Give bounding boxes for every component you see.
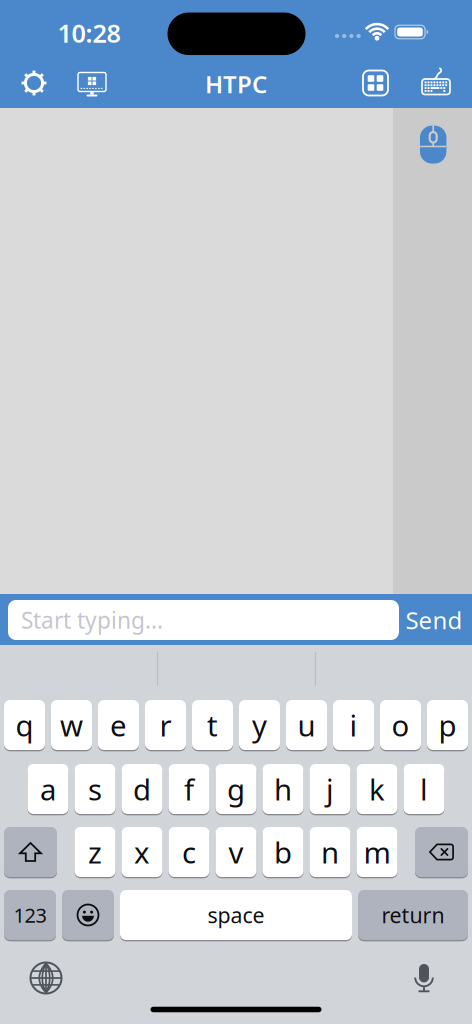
staticText: d bbox=[133, 769, 151, 808]
staticText: t bbox=[207, 705, 218, 744]
button[interactable] bbox=[420, 126, 446, 164]
staticText: z bbox=[88, 832, 102, 871]
staticText: HTPC bbox=[205, 68, 267, 100]
button[interactable]: Send bbox=[403, 600, 465, 640]
button[interactable] bbox=[363, 70, 388, 95]
button[interactable]: g bbox=[215, 763, 256, 815]
button[interactable]: w bbox=[51, 699, 92, 751]
staticText: e bbox=[110, 705, 127, 744]
staticText: w bbox=[60, 705, 83, 744]
staticText: o bbox=[391, 705, 409, 744]
button[interactable] bbox=[62, 889, 114, 941]
button[interactable] bbox=[0, 108, 472, 594]
button[interactable] bbox=[4, 826, 57, 878]
button[interactable] bbox=[29, 961, 62, 994]
staticText: j bbox=[326, 769, 334, 808]
staticText: n bbox=[321, 832, 339, 871]
staticText: v bbox=[228, 832, 243, 871]
staticText: a bbox=[40, 769, 56, 808]
staticText: p bbox=[438, 705, 456, 744]
button[interactable]: return bbox=[358, 889, 468, 941]
button[interactable]: z bbox=[74, 826, 115, 878]
button[interactable]: k bbox=[356, 763, 397, 815]
button[interactable]: v bbox=[215, 826, 256, 878]
button[interactable]: r bbox=[145, 699, 186, 751]
button[interactable]: b bbox=[262, 826, 303, 878]
button[interactable] bbox=[19, 68, 49, 98]
staticText: 10:28 bbox=[57, 16, 120, 50]
staticText: f bbox=[184, 769, 194, 808]
button[interactable]: j bbox=[309, 763, 350, 815]
staticText: b bbox=[274, 832, 292, 871]
button[interactable]: Start typing... bbox=[8, 600, 399, 640]
staticText: q bbox=[15, 705, 33, 744]
button[interactable]: y bbox=[239, 699, 280, 751]
button[interactable]: s bbox=[74, 763, 115, 815]
button[interactable]: n bbox=[309, 826, 350, 878]
button[interactable]: h bbox=[262, 763, 303, 815]
button[interactable] bbox=[419, 63, 453, 94]
staticText: s bbox=[88, 769, 102, 808]
staticText: x bbox=[134, 832, 150, 871]
button[interactable]: p bbox=[427, 699, 468, 751]
staticText: u bbox=[297, 705, 315, 744]
button[interactable]: 123 bbox=[4, 889, 56, 941]
button[interactable]: m bbox=[356, 826, 397, 878]
staticText: space bbox=[207, 901, 264, 929]
button[interactable]: x bbox=[121, 826, 162, 878]
button[interactable]: f bbox=[168, 763, 209, 815]
button[interactable]: l bbox=[403, 763, 444, 815]
staticText: k bbox=[369, 769, 385, 808]
button[interactable]: q bbox=[4, 699, 45, 751]
button[interactable]: space bbox=[120, 889, 352, 941]
staticText: g bbox=[227, 769, 245, 808]
button[interactable]: e bbox=[98, 699, 139, 751]
staticText: y bbox=[252, 705, 267, 744]
staticText: m bbox=[363, 832, 390, 871]
staticText: return bbox=[381, 901, 444, 929]
staticText: i bbox=[349, 705, 357, 744]
button[interactable] bbox=[412, 963, 435, 993]
button[interactable]: i bbox=[333, 699, 374, 751]
button[interactable]: o bbox=[380, 699, 421, 751]
button[interactable]: a bbox=[27, 763, 68, 815]
staticText: Send bbox=[405, 604, 462, 636]
button[interactable] bbox=[415, 826, 468, 878]
staticText: c bbox=[182, 832, 196, 871]
button[interactable]: d bbox=[121, 763, 162, 815]
staticText: h bbox=[274, 769, 292, 808]
staticText: l bbox=[420, 769, 428, 808]
button[interactable] bbox=[393, 108, 472, 594]
button[interactable] bbox=[76, 70, 108, 97]
button[interactable]: t bbox=[192, 699, 233, 751]
staticText: Start typing... bbox=[21, 605, 163, 635]
button[interactable]: u bbox=[286, 699, 327, 751]
staticText: r bbox=[159, 705, 171, 744]
button[interactable]: c bbox=[168, 826, 209, 878]
staticText: 123 bbox=[13, 902, 46, 928]
